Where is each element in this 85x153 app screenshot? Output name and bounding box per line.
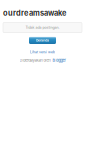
staticText: Beranda	[36, 38, 49, 42]
staticText: Blogger	[52, 58, 65, 63]
button[interactable]: Blogger	[52, 58, 65, 63]
staticText: ourdreamsawake	[3, 8, 66, 17]
button[interactable]: Lihat versi web	[30, 50, 55, 54]
staticText: Diberdayakan oleh	[19, 58, 50, 63]
button[interactable]: Beranda	[29, 36, 56, 44]
staticText: Tidak ada postingan.	[25, 25, 59, 30]
staticText: Lihat versi web	[30, 50, 55, 54]
